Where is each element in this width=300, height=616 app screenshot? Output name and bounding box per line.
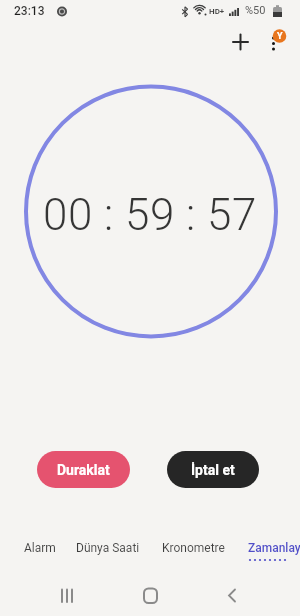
staticText: %50 [245, 4, 266, 17]
staticText: Y [277, 31, 283, 42]
button[interactable] [262, 28, 286, 52]
staticText: 00 : 59 : 57 [43, 189, 257, 241]
button[interactable] [212, 580, 252, 610]
button[interactable] [52, 580, 92, 610]
staticText: Kronometre [162, 541, 225, 555]
button[interactable]: Zamanlayıcı [248, 541, 300, 555]
button[interactable]: Kronometre [162, 541, 225, 555]
staticText: 23:13 [14, 4, 45, 18]
staticText: İptal et [191, 462, 235, 478]
staticText: Duraklat [57, 462, 110, 478]
button[interactable] [130, 580, 170, 610]
button[interactable]: Duraklat [37, 451, 130, 488]
staticText: Alarm [24, 541, 56, 555]
button[interactable]: Alarm [24, 541, 56, 555]
button[interactable]: İptal et [167, 451, 259, 488]
button[interactable] [228, 28, 252, 52]
button[interactable]: Dünya Saati [76, 541, 140, 555]
staticText: Dünya Saati [76, 541, 140, 555]
staticText: HD+ [209, 7, 225, 16]
staticText: Zamanlayıcı [248, 541, 300, 555]
